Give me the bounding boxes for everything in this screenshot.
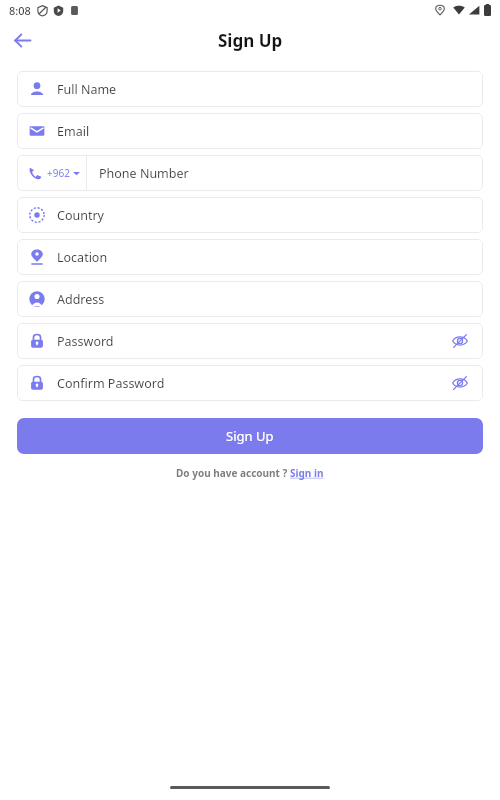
staticText: Password	[57, 333, 114, 350]
button[interactable]: Address	[17, 281, 483, 317]
staticText: Confirm Password	[57, 375, 165, 392]
staticText: Sign Up	[226, 427, 274, 445]
button[interactable]: Location	[17, 239, 483, 275]
button[interactable]: Toggle password visibility	[449, 372, 471, 394]
staticText: Sign in	[290, 466, 324, 480]
staticText: Address	[57, 291, 105, 308]
button[interactable]: Confirm Password	[17, 365, 483, 401]
button[interactable]: Toggle password visibility	[449, 330, 471, 352]
staticText: Email	[57, 123, 90, 140]
button[interactable]: Country	[17, 197, 483, 233]
staticText: Phone Number	[99, 165, 189, 182]
staticText: +962	[47, 166, 70, 180]
staticText: Full Name	[57, 81, 117, 98]
staticText: Country	[57, 207, 104, 224]
button[interactable]: Back	[8, 26, 36, 54]
staticText: Sign Up	[218, 29, 283, 52]
staticText: 8:08	[9, 3, 31, 18]
button[interactable]: Password	[17, 323, 483, 359]
staticText: Location	[57, 249, 108, 266]
button[interactable]: Sign in	[290, 466, 324, 480]
button[interactable]: Phone Number	[87, 155, 483, 191]
staticText: Do you have account ?	[176, 466, 290, 480]
button[interactable]: Sign Up	[17, 418, 483, 454]
button[interactable]: Full Name	[17, 71, 483, 107]
button[interactable]: Email	[17, 113, 483, 149]
button[interactable]: +962	[17, 155, 86, 191]
